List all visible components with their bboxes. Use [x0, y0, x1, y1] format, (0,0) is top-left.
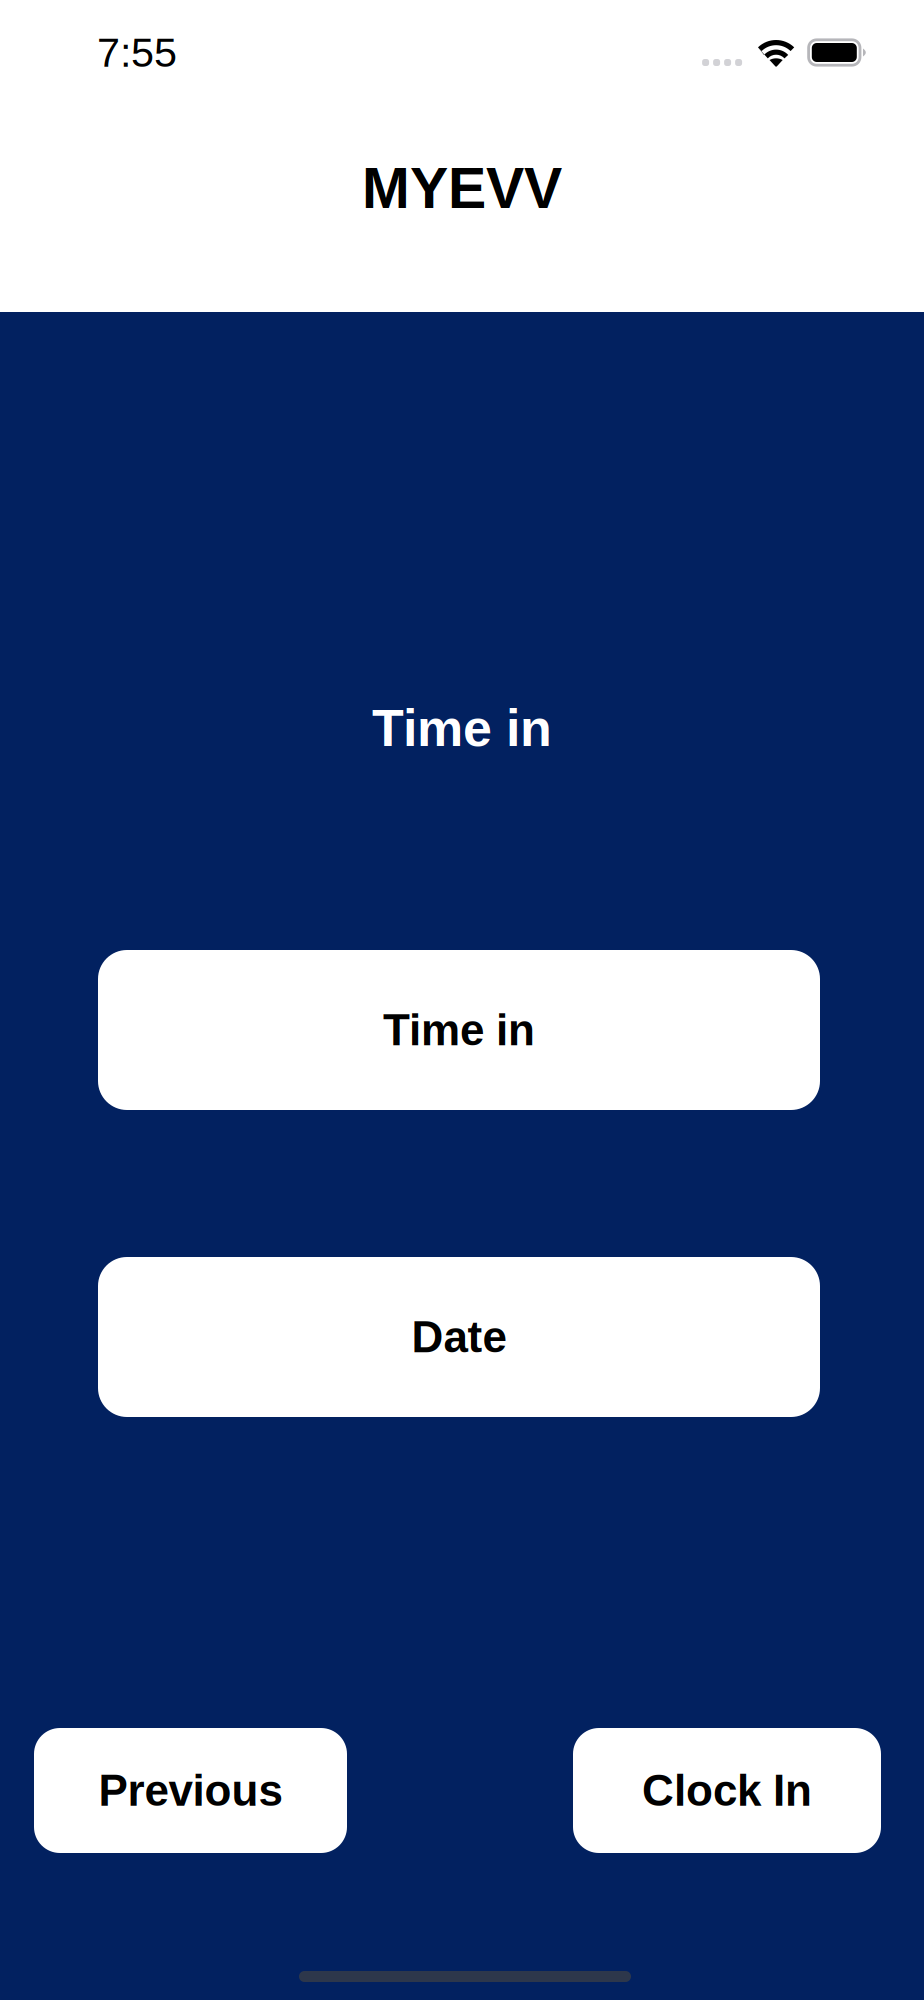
staticText: Clock In [642, 1766, 812, 1815]
staticText: Time in [372, 699, 552, 757]
staticText: Previous [98, 1766, 282, 1815]
staticText: 7:55 [97, 29, 177, 76]
button[interactable]: Clock In [573, 1728, 881, 1853]
staticText: MYEVV [362, 156, 562, 220]
staticText: Date [411, 1312, 506, 1362]
button[interactable]: Time in [98, 950, 820, 1110]
staticText: Time in [383, 1005, 535, 1055]
button[interactable]: Date [98, 1257, 820, 1417]
button[interactable]: Previous [34, 1728, 347, 1853]
